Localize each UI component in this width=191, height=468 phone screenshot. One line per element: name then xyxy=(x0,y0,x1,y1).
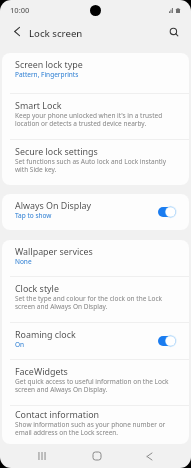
staticText: Pattern, Fingerprints xyxy=(15,70,79,79)
button[interactable]: Screen lock type xyxy=(2,53,189,93)
staticText: Secure lock settings xyxy=(15,145,98,157)
button[interactable]: Roaming clock xyxy=(2,323,189,359)
button[interactable]: Smart Lock xyxy=(2,94,189,139)
staticText: None xyxy=(15,257,32,266)
staticText: Screen lock type xyxy=(15,58,83,70)
button[interactable]: Contact information xyxy=(2,406,189,444)
button[interactable]: FaceWidgets xyxy=(2,360,189,405)
staticText: Get quick access to useful information o… xyxy=(15,377,169,394)
staticText: Tap to show xyxy=(15,211,52,220)
button[interactable]: Secure lock settings xyxy=(2,140,189,185)
staticText: Set functions such as Auto lock and Lock… xyxy=(15,157,167,174)
staticText: Lock screen xyxy=(29,27,83,40)
staticText: Smart Lock xyxy=(15,99,62,111)
button[interactable]: Home xyxy=(85,444,109,468)
staticText: FaceWidgets xyxy=(15,365,68,377)
button[interactable]: Toggle switch, on xyxy=(158,335,176,347)
staticText: Clock style xyxy=(15,282,59,294)
button[interactable]: Toggle switch, on xyxy=(158,206,176,218)
staticText: Contact information xyxy=(15,408,100,420)
button[interactable]: Search xyxy=(163,21,185,43)
button[interactable]: Recent apps xyxy=(30,444,54,468)
button[interactable]: Wallpaper services xyxy=(2,240,189,276)
staticText: Wallpaper services xyxy=(15,245,93,257)
staticText: Keep your phone unlocked when it's in a … xyxy=(15,111,163,128)
staticText: On xyxy=(15,340,25,349)
staticText: 10:00 xyxy=(10,5,30,15)
staticText: Set the type and colour for the clock on… xyxy=(15,294,162,311)
button[interactable]: Back xyxy=(137,444,161,468)
button[interactable]: Clock style xyxy=(2,277,189,322)
button[interactable]: Navigate up xyxy=(6,21,27,42)
staticText: Always On Display xyxy=(15,199,92,211)
staticText: Show information such as your phone numb… xyxy=(15,420,166,437)
button[interactable]: Always On Display xyxy=(2,194,189,230)
staticText: Roaming clock xyxy=(15,328,76,340)
